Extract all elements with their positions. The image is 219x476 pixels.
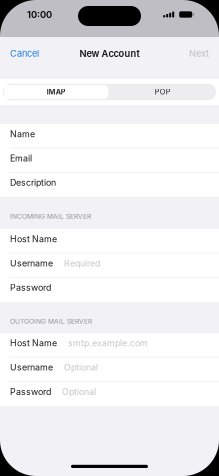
staticText: Host Name	[10, 234, 57, 244]
button[interactable]: Host Name	[0, 229, 219, 253]
staticText: Optional	[64, 362, 98, 373]
staticText: Email	[10, 153, 32, 163]
staticText: New Account	[79, 48, 139, 59]
button[interactable]: Cancel	[0, 42, 49, 65]
button[interactable]: IMAP	[3, 84, 109, 100]
staticText: Password	[10, 386, 51, 397]
button[interactable]: Username	[0, 253, 219, 278]
staticText: POP	[155, 88, 171, 96]
button[interactable]: Password	[0, 382, 219, 406]
button[interactable]: Next	[179, 42, 219, 65]
staticText: Next	[189, 48, 209, 59]
button[interactable]: Description	[0, 173, 219, 197]
staticText: OUTGOING MAIL SERVER	[10, 317, 92, 325]
button[interactable]: Username	[0, 357, 219, 382]
staticText: smtp.example.com	[68, 338, 148, 348]
staticText: Cancel	[10, 48, 39, 59]
button[interactable]: POP	[109, 84, 216, 100]
staticText: Password	[10, 282, 51, 293]
staticText: Username	[10, 258, 53, 269]
staticText: Host Name	[10, 338, 57, 348]
button[interactable]: Host Name	[0, 333, 219, 357]
staticText: INCOMING MAIL SERVER	[10, 212, 91, 220]
staticText: 10:00	[27, 9, 52, 20]
staticText: Name	[10, 129, 35, 139]
button[interactable]: Email	[0, 148, 219, 173]
staticText: Description	[10, 177, 56, 188]
staticText: IMAP	[47, 88, 66, 96]
staticText: Optional	[62, 386, 96, 397]
staticText: Username	[10, 362, 53, 373]
button[interactable]: Name	[0, 124, 219, 148]
staticText: Required	[64, 258, 100, 269]
button[interactable]: Password	[0, 278, 219, 302]
